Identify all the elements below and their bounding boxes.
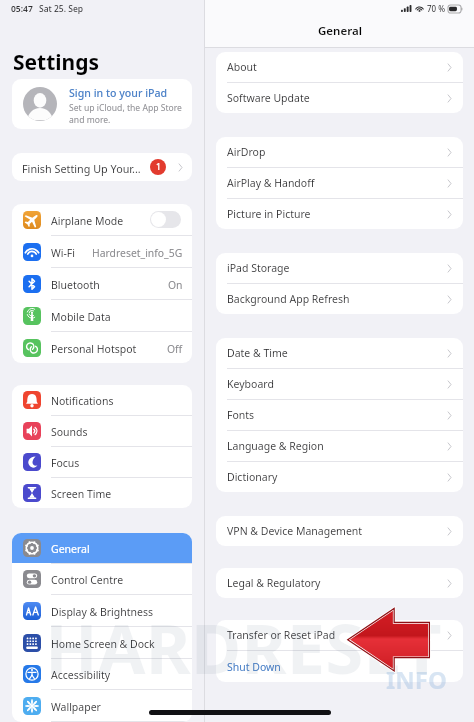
staticText: AirDrop <box>227 145 266 159</box>
button[interactable]: Sign in to your iPad <box>12 79 192 129</box>
staticText: VPN & Device Management <box>227 524 363 538</box>
staticText: General <box>318 23 362 39</box>
staticText: Sign in to your iPad <box>69 86 168 100</box>
button[interactable]: General <box>12 533 192 563</box>
staticText: and more. <box>69 114 111 126</box>
button[interactable]: Bluetooth <box>12 268 192 299</box>
staticText: About <box>227 60 257 74</box>
staticText: General <box>51 542 90 556</box>
button[interactable]: Accessibility <box>12 659 192 689</box>
button[interactable]: Screen Time <box>12 478 192 508</box>
staticText: 1 <box>156 161 161 173</box>
staticText: Screen Time <box>51 487 112 501</box>
button[interactable]: Wallpaper <box>12 690 192 721</box>
staticText: Keyboard <box>227 377 274 391</box>
staticText: Notifications <box>51 394 114 408</box>
staticText: Wallpaper <box>51 700 101 714</box>
staticText: Shut Down <box>227 660 281 674</box>
button[interactable]: Display & Brightness <box>12 595 192 626</box>
staticText: 70 % <box>427 3 446 14</box>
staticText: Fonts <box>227 408 255 422</box>
staticText: Settings <box>13 48 100 77</box>
button[interactable]: Fonts <box>216 400 463 430</box>
staticText: Set up iCloud, the App Store <box>69 102 182 114</box>
staticText: Legal & Regulatory <box>227 576 321 590</box>
button[interactable]: VPN & Device Management <box>216 516 463 546</box>
staticText: Display & Brightness <box>51 605 154 619</box>
staticText: Airplane Mode <box>51 214 124 228</box>
button[interactable]: Notifications <box>12 385 192 415</box>
staticText: Picture in Picture <box>227 207 311 221</box>
staticText: Transfer or Reset iPad <box>227 628 336 642</box>
staticText: Home Screen & Dock <box>51 637 155 651</box>
button[interactable]: Date & Time <box>216 338 463 368</box>
button[interactable]: Legal & Regulatory <box>216 568 463 598</box>
button[interactable]: Keyboard <box>216 369 463 399</box>
button[interactable]: Focus <box>12 447 192 477</box>
staticText: Off <box>167 342 183 356</box>
staticText: Personal Hotspot <box>51 342 137 356</box>
staticText: Date & Time <box>227 346 288 360</box>
button[interactable]: Software Update <box>216 83 463 113</box>
button[interactable]: iPad Storage <box>216 253 463 283</box>
button[interactable]: Background App Refresh <box>216 284 463 314</box>
staticText: AirPlay & Handoff <box>227 176 315 190</box>
button[interactable]: Language & Region <box>216 431 463 461</box>
button[interactable]: Picture in Picture <box>216 199 463 229</box>
button[interactable]: Transfer or Reset iPad <box>216 620 463 650</box>
staticText: Finish Setting Up Your... <box>22 161 141 176</box>
staticText: Software Update <box>227 91 310 105</box>
staticText: Sat 25. Sep <box>39 3 84 15</box>
button[interactable]: Mobile Data <box>12 300 192 331</box>
button[interactable]: Wi-Fi <box>12 236 192 267</box>
button[interactable]: AirDrop <box>216 137 463 167</box>
staticText: Dictionary <box>227 470 278 484</box>
staticText: Sounds <box>51 425 88 439</box>
staticText: Hardreset_info_5G <box>92 246 183 260</box>
button[interactable]: Dictionary <box>216 462 463 492</box>
staticText: Bluetooth <box>51 278 100 292</box>
button[interactable]: Control Centre <box>12 564 192 594</box>
staticText: 05:47 <box>11 3 33 15</box>
button[interactable]: Sounds <box>12 416 192 446</box>
staticText: Accessibility <box>51 668 111 682</box>
button[interactable]: Airplane Mode toggle <box>150 211 181 228</box>
staticText: Wi-Fi <box>51 246 76 260</box>
button[interactable]: AirPlay & Handoff <box>216 168 463 198</box>
staticText: Control Centre <box>51 573 124 587</box>
button[interactable]: About <box>216 52 463 82</box>
staticText: Background App Refresh <box>227 292 350 306</box>
staticText: Focus <box>51 456 80 470</box>
button[interactable]: Shut Down <box>216 651 463 682</box>
staticText: HARDRESET <box>45 600 442 694</box>
staticText: iPad Storage <box>227 261 290 275</box>
button[interactable]: Home Screen & Dock <box>12 627 192 658</box>
staticText: INFO <box>386 663 448 696</box>
staticText: Language & Region <box>227 439 324 453</box>
staticText: On <box>168 278 183 292</box>
button[interactable]: Airplane Mode <box>12 204 192 235</box>
staticText: Mobile Data <box>51 310 111 324</box>
button[interactable]: Finish Setting Up Your... <box>12 153 192 181</box>
button[interactable]: Personal Hotspot <box>12 332 192 363</box>
